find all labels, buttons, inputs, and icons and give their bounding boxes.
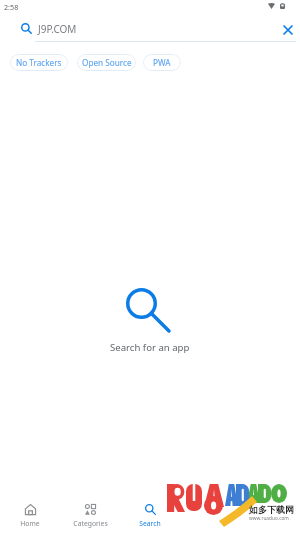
staticText: Open Source — [82, 57, 132, 68]
staticText: www.ruaduo.com — [249, 515, 289, 522]
staticText: PWA — [153, 57, 171, 68]
staticText: No Trackers — [16, 57, 62, 68]
button[interactable]: No Trackers — [10, 54, 68, 71]
button[interactable]: Updates — [180, 500, 240, 534]
button[interactable]: Search — [120, 500, 180, 528]
staticText: Search for an app — [110, 341, 190, 354]
staticText: Search — [139, 519, 161, 528]
button[interactable]: Settings — [240, 500, 300, 534]
button[interactable]: Open Source — [77, 54, 136, 71]
button[interactable]: Categories — [60, 500, 120, 528]
staticText: J9P.COM — [38, 22, 77, 36]
staticText: Categories — [73, 519, 108, 528]
staticText: 2:58 — [4, 2, 19, 12]
staticText: Home — [20, 519, 40, 528]
button[interactable]: Clear — [278, 20, 298, 40]
staticText: 如多下载网 — [249, 504, 294, 515]
button[interactable]: PWA — [143, 54, 181, 71]
button[interactable]: Home — [0, 500, 60, 528]
